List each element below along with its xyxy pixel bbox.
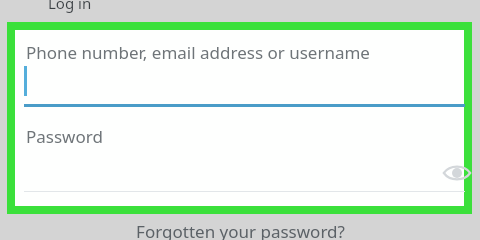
- button[interactable]: Password: [15, 107, 464, 192]
- staticText: Forgotten your password?: [136, 220, 345, 240]
- button[interactable]: Phone number, email address or username: [15, 30, 464, 107]
- staticText: Password: [26, 125, 103, 148]
- button[interactable]: Show password: [437, 153, 477, 193]
- staticText: Log in: [48, 0, 92, 13]
- staticText: Phone number, email address or username: [26, 41, 370, 64]
- button[interactable]: Forgotten your password?: [0, 220, 480, 240]
